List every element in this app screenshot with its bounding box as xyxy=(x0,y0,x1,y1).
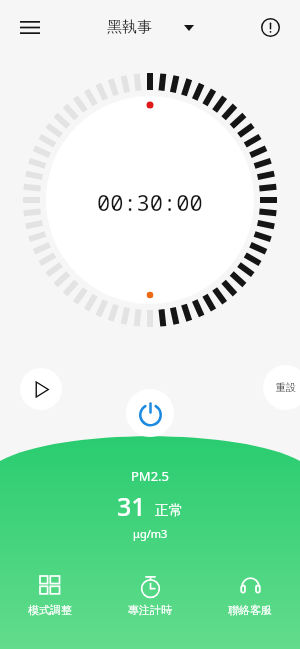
button[interactable]: 黑執事 xyxy=(107,18,194,37)
staticText: 正常 xyxy=(155,502,183,520)
staticText: PM2.5 xyxy=(131,467,170,485)
button[interactable]: Play xyxy=(20,368,62,410)
staticText: 00:30:00 xyxy=(97,187,203,217)
staticText: 黑執事 xyxy=(107,18,152,37)
staticText: 模式調整 xyxy=(28,603,72,617)
button[interactable]: Menu xyxy=(10,7,50,47)
staticText: 重設 xyxy=(276,381,296,394)
button[interactable]: 模式調整 xyxy=(0,566,100,646)
staticText: 31 xyxy=(117,489,146,523)
button[interactable]: Power xyxy=(126,389,174,437)
staticText: 專注計時 xyxy=(128,603,172,617)
button[interactable]: 重設 xyxy=(263,365,300,410)
staticText: 聯絡客服 xyxy=(228,603,272,617)
button[interactable]: Info xyxy=(250,7,290,47)
button[interactable]: 聯絡客服 xyxy=(200,566,300,646)
staticText: μg/m3 xyxy=(133,526,168,541)
button[interactable]: 專注計時 xyxy=(100,566,200,646)
